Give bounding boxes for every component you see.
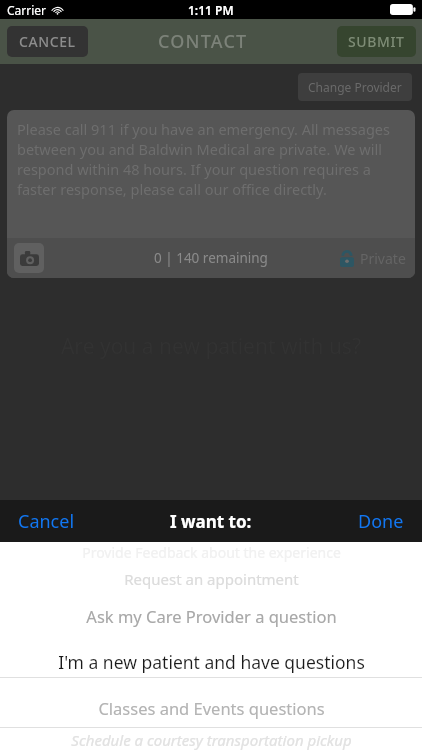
staticText: CONTACT	[158, 29, 248, 54]
staticText: 1:11 PM	[188, 2, 234, 18]
button[interactable]: SUBMIT	[337, 26, 416, 57]
button[interactable]: Ask my Care Provider a question	[0, 595, 422, 637]
staticText: I want to:	[170, 510, 252, 533]
staticText: 0 | 140 remaining	[154, 249, 268, 267]
staticText: Please call 911 if you have an emergency…	[17, 119, 405, 199]
button[interactable]: Classes and Events questions	[0, 687, 422, 729]
button[interactable]: Done	[340, 501, 422, 542]
staticText: Carrier	[7, 2, 47, 18]
button[interactable]: Change Provider	[298, 73, 412, 101]
staticText: Request an appointment	[124, 569, 299, 589]
button[interactable]: Cancel	[0, 501, 93, 542]
button[interactable]: Please call 911 if you have an emergency…	[7, 110, 415, 238]
staticText: CANCEL	[19, 32, 76, 51]
staticText: Ask my Care Provider a question	[86, 605, 337, 627]
staticText: Provide Feedback about the experience	[82, 543, 341, 562]
staticText: Schedule a courtesy transportation picku…	[71, 730, 352, 750]
button[interactable]: CANCEL	[7, 26, 88, 57]
button[interactable]: Private	[340, 249, 406, 268]
button[interactable]: Schedule a courtesy transportation picku…	[0, 729, 422, 750]
staticText: Done	[358, 509, 404, 534]
staticText: SUBMIT	[348, 32, 405, 51]
button[interactable]: Attach photo	[14, 243, 44, 273]
button[interactable]: Provide Feedback about the experience	[0, 542, 422, 563]
staticText: I'm a new patient and have questions	[58, 650, 365, 674]
button[interactable]: Request an appointment	[0, 563, 422, 595]
staticText: Change Provider	[308, 79, 402, 95]
staticText: Classes and Events questions	[98, 697, 325, 719]
button[interactable]: I'm a new patient and have questions	[0, 637, 422, 687]
staticText: Private	[360, 249, 406, 268]
staticText: Cancel	[18, 509, 75, 534]
